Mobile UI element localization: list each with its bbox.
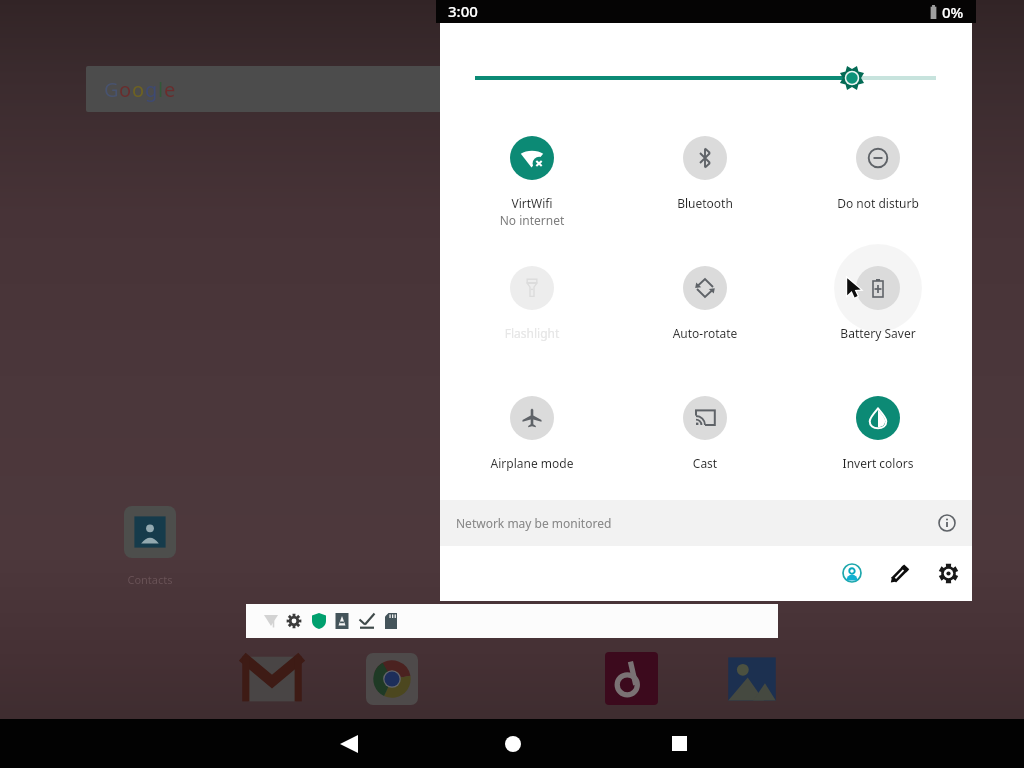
- button[interactable]: G: [86, 66, 506, 112]
- button[interactable]: [246, 604, 778, 638]
- button[interactable]: Settings: [928, 553, 968, 593]
- staticText: Do not disturb: [820, 195, 936, 211]
- staticText: l: [158, 76, 164, 103]
- staticText: o: [132, 76, 145, 103]
- button[interactable]: Network may be monitored: [440, 500, 972, 546]
- button[interactable]: Do not disturb: [820, 113, 936, 225]
- staticText: Cast: [647, 455, 763, 471]
- staticText: Invert colors: [820, 455, 936, 471]
- button[interactable]: Contacts: [124, 506, 176, 558]
- button[interactable]: Cast: [647, 373, 763, 485]
- button[interactable]: Auto-rotate: [647, 243, 763, 355]
- button[interactable]: Home: [488, 719, 537, 768]
- staticText: Bluetooth: [647, 195, 763, 211]
- button[interactable]: Deezer: [605, 652, 658, 705]
- button[interactable]: Flashlight: [474, 243, 590, 355]
- button[interactable]: Brightness: [440, 58, 972, 98]
- staticText: VirtWifi: [474, 195, 590, 211]
- staticText: e: [164, 76, 176, 103]
- staticText: Contacts: [110, 572, 190, 587]
- button[interactable]: VirtWifi: [474, 113, 590, 225]
- staticText: 3:00: [448, 1, 478, 21]
- staticText: o: [119, 76, 132, 103]
- button[interactable]: Airplane mode: [474, 373, 590, 485]
- button[interactable]: Gmail: [241, 653, 303, 715]
- staticText: G: [104, 76, 119, 103]
- button[interactable]: Bluetooth: [647, 113, 763, 225]
- button[interactable]: Chrome: [366, 653, 418, 705]
- button[interactable]: Battery Saver: [820, 243, 936, 355]
- staticText: Auto-rotate: [647, 325, 763, 341]
- button[interactable]: Back: [330, 719, 432, 768]
- button[interactable]: Invert colors: [820, 373, 936, 485]
- staticText: No internet: [474, 212, 590, 228]
- staticText: g: [145, 76, 158, 103]
- staticText: Battery Saver: [820, 325, 936, 341]
- button[interactable]: Photos: [725, 652, 779, 706]
- staticText: Network may be monitored: [456, 515, 612, 531]
- staticText: Flashlight: [474, 325, 590, 341]
- button[interactable]: Edit: [880, 553, 920, 593]
- button[interactable]: Recents: [655, 719, 704, 768]
- staticText: Airplane mode: [474, 455, 590, 471]
- button[interactable]: User: [832, 553, 872, 593]
- staticText: 0%: [942, 2, 964, 22]
